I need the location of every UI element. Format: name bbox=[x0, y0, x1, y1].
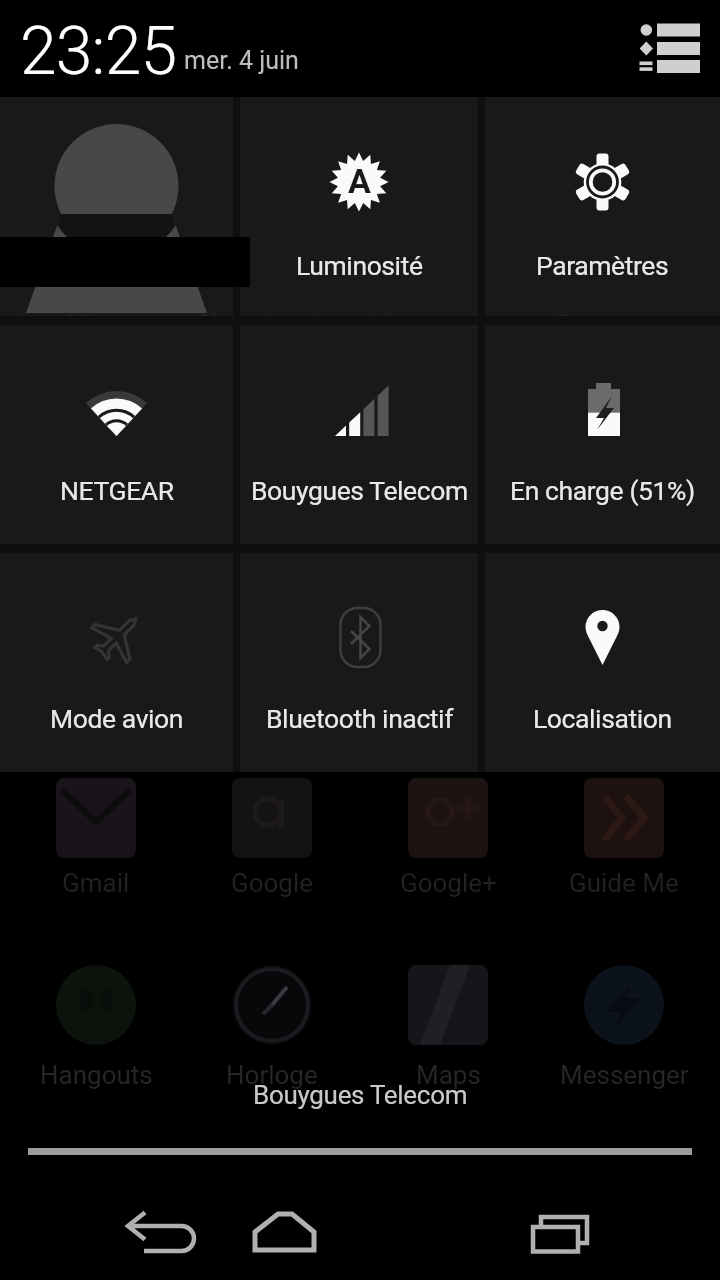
staticText: Guide Me bbox=[569, 868, 679, 898]
staticText: Luminosité bbox=[296, 250, 423, 281]
staticText: NETGEAR bbox=[60, 475, 174, 506]
staticText: Google+ bbox=[400, 868, 497, 898]
button[interactable]: NETGEAR bbox=[0, 325, 233, 544]
staticText: Accéder au profil bbox=[15, 310, 218, 316]
staticText: Localisation bbox=[533, 703, 672, 734]
staticText: Google bbox=[231, 868, 314, 898]
button[interactable] bbox=[112, 1198, 212, 1274]
staticText: A bbox=[348, 161, 371, 201]
button[interactable]: Mode avion bbox=[0, 553, 233, 772]
staticText: mer. 4 juin bbox=[184, 46, 299, 75]
staticText: Mode avion bbox=[50, 703, 184, 734]
button[interactable] bbox=[310, 1198, 410, 1274]
button[interactable]: Localisation bbox=[485, 553, 720, 772]
button[interactable]: Accéder au profil bbox=[0, 97, 233, 316]
staticText: Hangouts bbox=[40, 1060, 153, 1090]
staticText: Bluetooth inactif bbox=[266, 703, 453, 734]
button[interactable]: Bouygues Telecom bbox=[240, 325, 478, 544]
staticText: En charge (51%) bbox=[510, 475, 695, 506]
staticText: Bouygues Telecom bbox=[253, 1080, 468, 1110]
staticText: Gmail bbox=[62, 868, 130, 898]
button[interactable]: Bluetooth inactif bbox=[240, 553, 478, 772]
staticText: Maps bbox=[416, 1060, 481, 1090]
button[interactable]: Luminosité auto bbox=[240, 97, 478, 316]
button[interactable]: Batterie bbox=[485, 97, 720, 316]
button[interactable]: En charge (51%) bbox=[485, 325, 720, 544]
staticText: Horloge bbox=[226, 1060, 318, 1090]
button[interactable] bbox=[510, 1198, 610, 1274]
staticText: Bouygues Telecom bbox=[251, 475, 468, 506]
staticText: Messenger bbox=[560, 1060, 689, 1090]
staticText: 23:25 bbox=[20, 13, 177, 90]
button[interactable] bbox=[618, 6, 714, 90]
staticText: Paramètres bbox=[536, 250, 669, 281]
